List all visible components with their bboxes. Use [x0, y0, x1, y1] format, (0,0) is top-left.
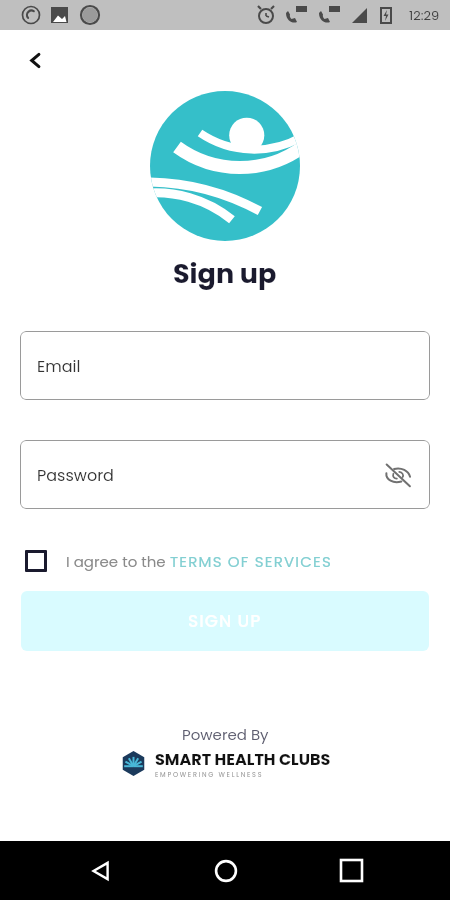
staticText: E M P O W E R I N G W E L L N E S S	[155, 770, 262, 779]
staticText: SMART HEALTH CLUBS	[155, 748, 331, 770]
button[interactable]: Back	[17, 42, 53, 78]
staticText: I agree to the	[66, 551, 170, 572]
button[interactable]: Agree to terms checkbox	[25, 550, 47, 572]
staticText: Email	[37, 355, 81, 377]
staticText: TERMS OF SERVICES	[170, 551, 332, 572]
button[interactable]: Password	[20, 440, 430, 509]
button[interactable]: SIGN UP	[21, 591, 429, 651]
button[interactable]: Back	[79, 841, 123, 900]
button[interactable]: Email	[20, 331, 430, 400]
button[interactable]: Recent apps	[329, 841, 373, 900]
staticText: Password	[37, 464, 114, 486]
staticText: Powered By	[182, 724, 269, 745]
staticText: 12:29	[409, 6, 440, 24]
staticText: SIGN UP	[188, 609, 262, 633]
staticText: Sign up	[173, 255, 277, 293]
button[interactable]: TERMS OF SERVICES	[170, 551, 332, 572]
button[interactable]: Show password	[382, 459, 414, 491]
button[interactable]: Home	[204, 841, 248, 900]
